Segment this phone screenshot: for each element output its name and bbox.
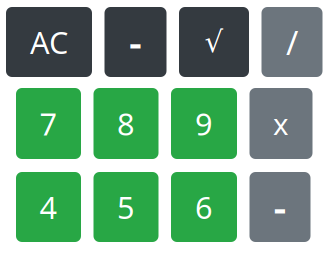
staticText: - <box>129 15 142 68</box>
staticText: - <box>273 180 286 233</box>
button[interactable]: Six <box>171 172 237 242</box>
button[interactable]: Nine <box>171 88 237 159</box>
button[interactable]: Subtract <box>249 172 310 242</box>
button[interactable]: Minus <box>104 7 166 77</box>
staticText: 8 <box>117 103 135 144</box>
button[interactable]: Five <box>93 172 158 242</box>
staticText: 4 <box>39 187 57 227</box>
button[interactable]: Four <box>16 172 81 242</box>
button[interactable]: All clear <box>6 7 92 77</box>
staticText: x <box>273 104 289 143</box>
button[interactable]: Square root <box>179 7 249 77</box>
staticText: √ <box>204 25 223 59</box>
button[interactable]: Multiply <box>249 88 312 159</box>
button[interactable]: Eight <box>93 88 158 159</box>
staticText: AC <box>30 22 68 62</box>
button[interactable]: Seven <box>16 88 81 159</box>
staticText: 9 <box>195 103 213 144</box>
staticText: 7 <box>39 103 57 144</box>
staticText: 5 <box>117 187 135 227</box>
button[interactable]: Divide <box>261 7 322 77</box>
staticText: 6 <box>195 187 213 227</box>
staticText: / <box>286 20 298 64</box>
